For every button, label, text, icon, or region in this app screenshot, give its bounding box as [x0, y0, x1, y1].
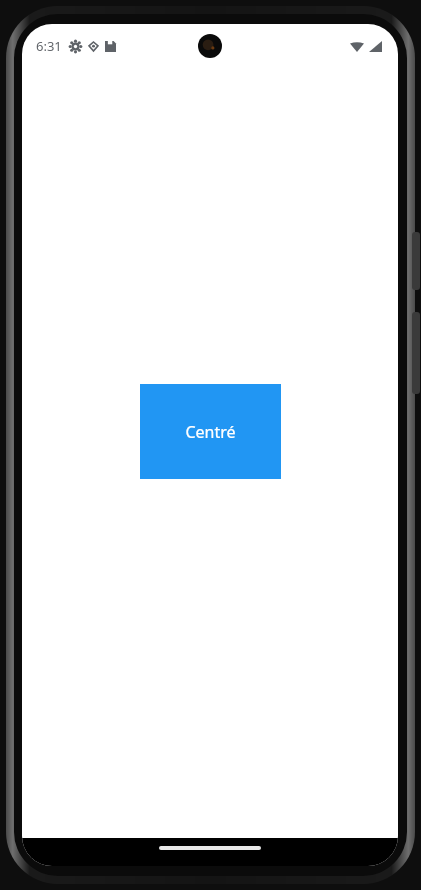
button[interactable]: Centré: [140, 384, 281, 479]
staticText: 6:31: [36, 37, 62, 55]
staticText: Centré: [185, 421, 236, 443]
button[interactable]: Home gesture bar: [159, 846, 261, 850]
